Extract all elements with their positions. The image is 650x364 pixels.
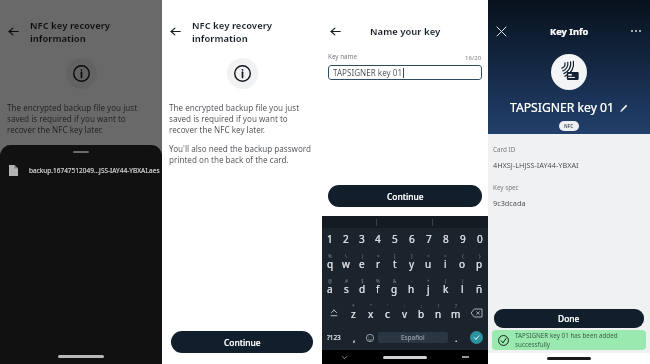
button[interactable]: [ <box>386 250 403 275</box>
button[interactable]: { <box>454 250 471 275</box>
staticText: Continue <box>387 191 424 202</box>
button[interactable]: TAPSIGNER key 01 <box>328 65 482 80</box>
staticText: : <box>404 303 406 309</box>
button[interactable]: 4 <box>370 228 386 250</box>
staticText: r <box>376 257 381 271</box>
staticText: 8 <box>443 232 449 246</box>
button[interactable]: % <box>370 275 386 300</box>
staticText: g <box>391 282 398 296</box>
staticText: NFC key recovery information <box>192 19 322 43</box>
button[interactable]: Shift <box>322 300 345 325</box>
staticText: ' <box>387 303 389 309</box>
button[interactable]: & <box>386 275 403 300</box>
button[interactable]: backup.16747512049...JSS-IAY44-YBXAI.aes <box>0 160 162 180</box>
staticText: - <box>411 278 413 284</box>
button[interactable]: 1 <box>322 228 338 250</box>
staticText: " <box>370 303 372 309</box>
button[interactable]: Back <box>326 22 344 40</box>
button[interactable]: 8 <box>437 228 454 250</box>
staticText: ? <box>455 303 457 309</box>
button[interactable]: Back <box>166 22 184 40</box>
staticText: Name your key <box>370 25 441 38</box>
staticText: p <box>476 257 483 271</box>
button[interactable]: Back <box>4 22 22 40</box>
button[interactable]: , <box>346 325 362 350</box>
staticText: b <box>418 307 425 321</box>
staticText: w <box>342 257 350 271</box>
staticText: 5 <box>392 232 398 246</box>
button[interactable]: Español <box>378 332 448 343</box>
staticText: 4HXSJ-LHJSS-IAY44-YBXAI <box>493 160 579 170</box>
staticText: d <box>359 282 366 296</box>
button[interactable]: 0 <box>471 228 488 250</box>
button[interactable]: } <box>471 250 488 275</box>
button[interactable]: @ <box>322 275 338 300</box>
staticText: 4 <box>375 232 381 246</box>
staticText: z <box>351 307 356 321</box>
staticText: s <box>344 282 349 296</box>
button[interactable]: ñ <box>471 275 488 300</box>
staticText: , <box>353 332 356 344</box>
button[interactable]: " <box>362 300 379 325</box>
staticText: TAPSIGNER key 01 has been added successf… <box>515 331 646 349</box>
button[interactable]: Emoji <box>362 325 378 350</box>
staticText: % <box>376 278 380 284</box>
button[interactable]: ' <box>379 300 396 325</box>
staticText: @ <box>328 278 333 284</box>
button[interactable]: ( <box>437 275 454 300</box>
button[interactable]: > <box>437 250 454 275</box>
staticText: > <box>444 253 447 259</box>
button[interactable]: Done <box>494 309 644 328</box>
button[interactable]: Enter <box>464 325 488 350</box>
staticText: TAPSIGNER key 01 <box>333 67 403 78</box>
button[interactable]: $ <box>354 275 370 300</box>
staticText: } <box>479 253 481 259</box>
button[interactable]: ? <box>447 300 464 325</box>
staticText: % <box>328 253 332 259</box>
button[interactable]: % <box>322 250 338 275</box>
staticText: You'll also need the backup password pri… <box>7 143 155 165</box>
staticText: 1 <box>327 232 333 246</box>
button[interactable]: - <box>403 275 420 300</box>
button[interactable]: = <box>370 250 386 275</box>
button[interactable]: 5 <box>386 228 403 250</box>
button[interactable]: 3 <box>354 228 370 250</box>
staticText: Done <box>558 313 580 324</box>
button[interactable]: 7 <box>420 228 437 250</box>
button[interactable]: * <box>345 300 362 325</box>
button[interactable]: + <box>420 275 437 300</box>
staticText: + <box>427 278 430 284</box>
button[interactable]: Edit name <box>619 103 628 112</box>
button[interactable]: | <box>354 250 370 275</box>
staticText: ?123 <box>327 333 341 342</box>
staticText: h <box>408 282 415 296</box>
button[interactable]: More options <box>627 22 645 40</box>
staticText: The encrypted backup file you just saved… <box>7 102 155 135</box>
staticText: i <box>444 257 447 271</box>
button[interactable]: Close <box>492 22 510 40</box>
button[interactable]: < <box>420 250 437 275</box>
button[interactable]: Continue <box>328 185 482 207</box>
button[interactable]: ; <box>413 300 430 325</box>
staticText: ! <box>438 303 440 309</box>
button[interactable]: # <box>338 275 354 300</box>
staticText: u <box>425 257 432 271</box>
staticText: & <box>393 278 397 284</box>
button[interactable]: 2 <box>338 228 354 250</box>
staticText: a <box>327 282 333 296</box>
button[interactable]: Hide keyboard <box>322 350 367 364</box>
button[interactable]: ! <box>430 300 447 325</box>
button[interactable]: 9 <box>454 228 471 250</box>
button[interactable]: ) <box>454 275 471 300</box>
staticText: ( <box>445 278 447 284</box>
button[interactable]: ] <box>403 250 420 275</box>
button[interactable]: . <box>448 325 464 350</box>
button[interactable]: 6 <box>403 228 420 250</box>
button[interactable]: Continue <box>171 331 313 353</box>
staticText: k <box>443 282 449 296</box>
button[interactable]: Delete <box>464 300 488 325</box>
button[interactable]: \ <box>338 250 354 275</box>
button[interactable]: ?123 <box>322 325 346 350</box>
button[interactable]: : <box>396 300 413 325</box>
staticText: You'll also need the backup password pri… <box>169 143 315 165</box>
